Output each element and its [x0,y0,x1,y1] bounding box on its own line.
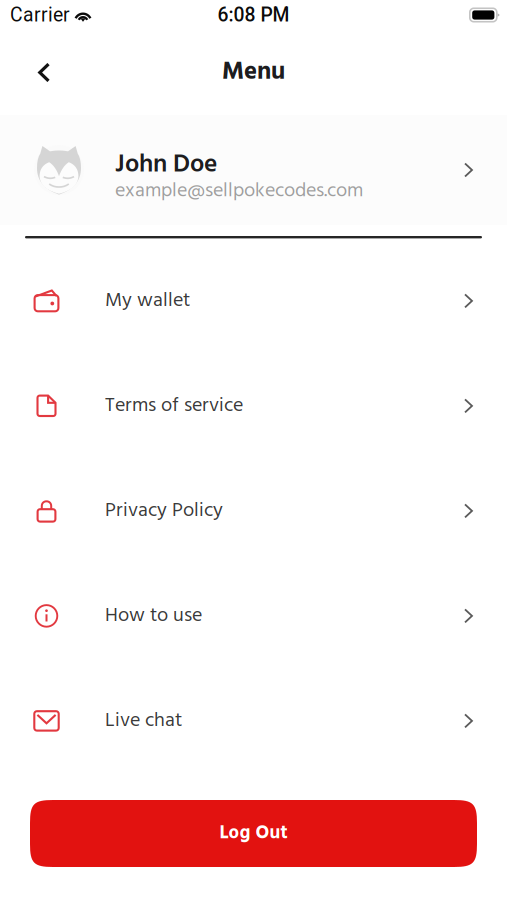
button[interactable]: My wallet [0,248,507,353]
staticText: Log Out [219,819,287,848]
staticText: Live chat [105,705,182,737]
staticText: How to use [105,600,202,632]
button[interactable]: Log Out [30,800,477,867]
staticText: Menu [222,53,285,92]
staticText: Privacy Policy [105,495,223,527]
button[interactable]: Live chat [0,668,507,773]
button[interactable]: Terms of service [0,353,507,458]
button[interactable]: John Doe [0,115,507,225]
button[interactable]: Privacy Policy [0,458,507,563]
staticText: example@sellpokecodes.com [115,175,363,207]
staticText: 6:08 PM [217,4,289,26]
button[interactable]: Back [21,49,67,95]
staticText: Carrier [10,4,70,26]
staticText: My wallet [105,285,190,317]
staticText: John Doe [115,145,217,185]
button[interactable]: How to use [0,563,507,668]
staticText: Terms of service [105,390,243,422]
